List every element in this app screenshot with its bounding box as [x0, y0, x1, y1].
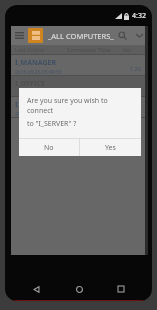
staticText: 2016.09.26 05:49:53 [15, 69, 62, 75]
button[interactable]: I_MANAGER [11, 55, 148, 75]
button[interactable]: More options [131, 26, 148, 45]
staticText: 2016.09.26 05:49:53 [15, 111, 62, 117]
staticText: I_OFFICE [15, 79, 45, 89]
staticText: _ALL COMPUTERS_ [48, 31, 114, 41]
staticText: Yes [105, 143, 116, 153]
staticText: 1.26 [130, 65, 141, 72]
button[interactable]: Home [72, 282, 86, 296]
button[interactable]: Search [114, 26, 131, 45]
button[interactable]: App icon [28, 28, 43, 43]
staticText: Connection Time [67, 46, 123, 53]
staticText: Are you sure you wish to connect [27, 96, 133, 116]
staticText: I_MANAGER [15, 58, 57, 68]
button[interactable]: Yes [80, 139, 141, 156]
button[interactable]: Back [29, 282, 43, 296]
staticText: 4:32 [132, 11, 146, 21]
button[interactable]: I_OFFICE [11, 76, 148, 96]
button[interactable]: No [19, 139, 79, 156]
staticText: Ver [123, 46, 132, 53]
staticText: 2016.09.26 05:49:53 - offline [15, 90, 81, 96]
staticText: I_SERVER [15, 100, 47, 110]
staticText: to "I_SERVER" ? [27, 119, 77, 129]
button[interactable]: I_SERVER [11, 97, 148, 117]
button[interactable]: Menu [11, 26, 28, 45]
staticText: 1.26 [130, 86, 141, 93]
button[interactable]: Recent apps [114, 282, 128, 296]
staticText: No [44, 143, 54, 153]
